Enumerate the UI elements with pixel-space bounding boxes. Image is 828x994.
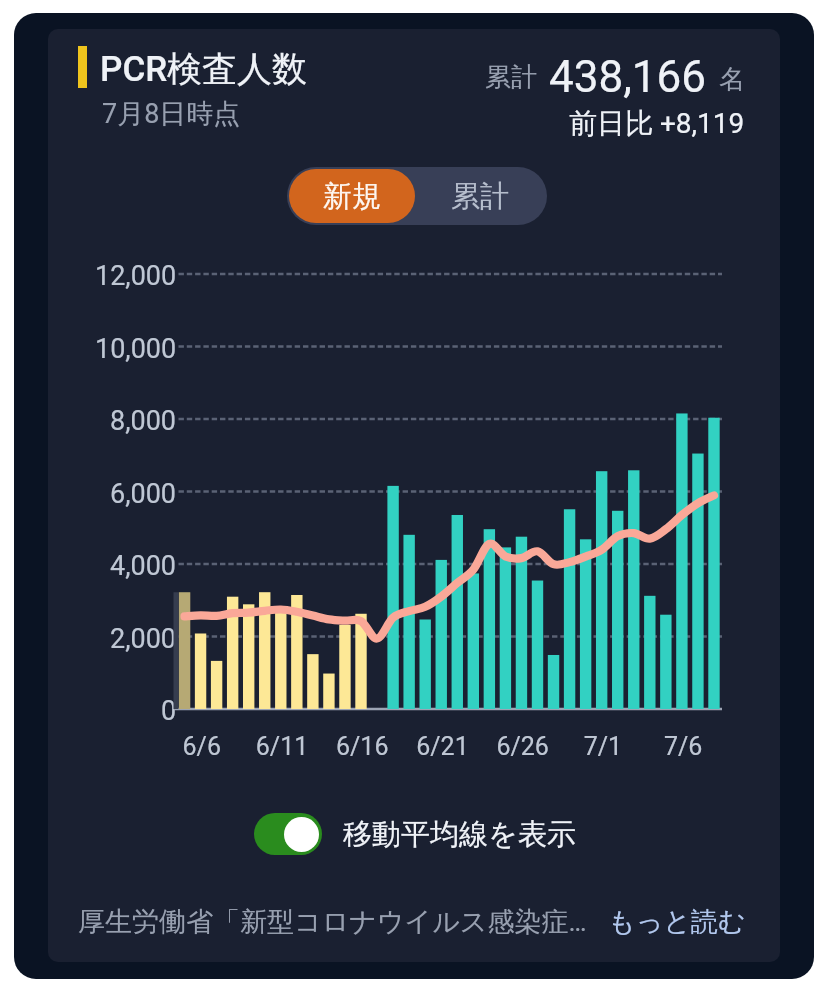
staticText: 厚生労働省「新型コロナウイルス感染症… (78, 905, 587, 939)
button[interactable]: 累計 (415, 167, 545, 225)
staticText: 移動平均線を表示 (343, 816, 576, 853)
staticText: 前日比 +8,119 (569, 106, 745, 141)
staticText: 7月8日時点 (102, 97, 241, 131)
staticText: PCR検査人数 (100, 47, 308, 91)
staticText: 累計 (485, 61, 537, 94)
staticText: 名 (719, 63, 745, 96)
button[interactable]: 新規 (289, 169, 415, 223)
button[interactable]: 移動平均線を表示 (254, 813, 576, 855)
staticText: 438,166 (549, 51, 707, 103)
staticText: 累計 (451, 178, 509, 215)
button[interactable]: もっと読む (608, 905, 746, 939)
staticText: 新規 (323, 178, 381, 215)
